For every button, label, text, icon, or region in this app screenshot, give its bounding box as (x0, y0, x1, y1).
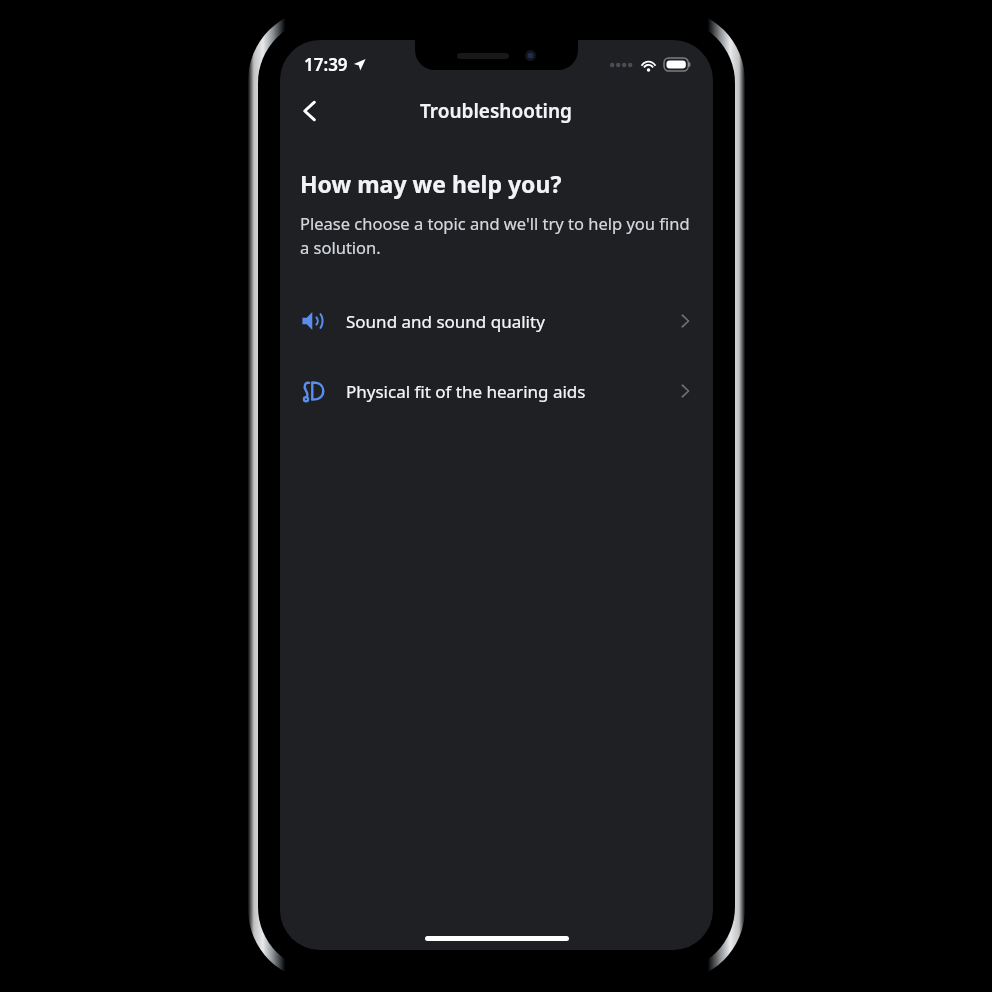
button[interactable]: Back (286, 87, 334, 135)
staticText: Sound and sound quality (346, 310, 545, 333)
staticText: Troubleshooting (420, 98, 573, 124)
staticText: Physical fit of the hearing aids (346, 380, 586, 403)
button[interactable]: Physical fit of the hearing aids (280, 371, 713, 411)
staticText: Please choose a topic and we'll try to h… (300, 212, 693, 259)
staticText: 17:39 (304, 53, 348, 76)
button[interactable]: Sound and sound quality (280, 301, 713, 341)
staticText: How may we help you? (300, 168, 562, 199)
